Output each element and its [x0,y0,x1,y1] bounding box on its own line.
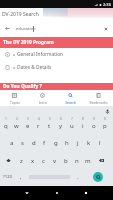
button[interactable]: 6 [55,116,66,133]
button[interactable]: Search [83,168,113,185]
staticText: o [92,122,96,130]
staticText: Topics [10,100,20,105]
button[interactable]: v [49,152,60,169]
other: Voice input [105,109,110,114]
button[interactable]: Space [26,168,73,185]
staticText: DV-2019 Search [2,11,39,18]
staticText: g [54,139,58,147]
button[interactable]: n [71,152,82,169]
staticText: 3 [27,117,29,121]
button[interactable]: g [50,134,61,151]
button[interactable]: Search [57,90,84,106]
button[interactable]: h [61,134,72,151]
other: Clear search [104,27,108,31]
button[interactable]: Intro [29,90,56,106]
staticText: x [31,157,35,165]
staticText: n [75,157,79,165]
staticText: Intro [39,100,47,105]
staticText: , [20,173,22,181]
staticText: l [99,139,101,147]
button[interactable]: k [83,134,94,151]
button[interactable]: , [16,168,26,185]
staticText: The DV 2019 Program [3,39,54,46]
button[interactable]: The DV 2019 Program [0,37,113,48]
button[interactable]: 4 [33,116,44,133]
button[interactable]: . [73,168,83,185]
button[interactable]: z [16,152,27,169]
button[interactable]: Bookmarks [85,90,112,106]
button[interactable]: Topics [1,90,28,106]
button[interactable]: 9 [88,116,99,133]
staticText: v [53,157,57,165]
staticText: m [85,157,91,165]
other: Back [5,26,10,31]
staticText: Do You Qualify ? [3,83,42,90]
staticText: b [64,157,68,165]
staticText: s [21,139,24,147]
button[interactable]: 7 [66,116,77,133]
staticText: r [37,122,40,130]
button[interactable]: Back [1,22,112,35]
staticText: 2 [16,117,18,121]
staticText: y [59,122,63,130]
staticText: u [70,122,74,130]
staticText: 6 [60,117,62,121]
button[interactable]: Do You Qualify ? [0,83,113,90]
staticText: 4 [38,117,40,121]
staticText: Bookmarks [89,100,108,105]
staticText: Search [65,100,76,105]
staticText: c [42,157,45,165]
staticText: Dates & Details [17,64,52,71]
button[interactable]: f [39,134,50,151]
button[interactable]: a [6,134,17,151]
button[interactable]: 3 [22,116,33,133]
button[interactable]: ?123 [0,168,16,185]
staticText: f [43,139,46,147]
staticText: p [103,122,107,130]
staticText: General Information [17,51,64,58]
staticText: h [65,139,69,147]
other: Recent apps [83,190,89,196]
button[interactable]: j [72,134,83,151]
button[interactable]: b [60,152,71,169]
button[interactable]: 1 [0,116,11,133]
button[interactable]: Dates & Details [0,61,113,74]
staticText: k [87,139,91,147]
staticText: w [14,122,19,130]
button[interactable]: Shift [0,152,16,169]
staticText: 1 [5,117,7,121]
staticText: 7 [71,117,73,121]
staticText: . [77,173,79,181]
button[interactable]: m [82,152,93,169]
staticText: 0 [104,117,106,121]
button[interactable]: s [17,134,28,151]
other: Back [24,190,30,196]
staticText: ?123 [3,174,13,180]
button[interactable]: l [94,134,105,151]
staticText: i [82,122,84,130]
staticText: 5 [49,117,51,121]
staticText: e [26,122,30,130]
button[interactable]: Backspace [93,152,109,169]
staticText: j [77,139,79,147]
staticText: z [20,157,23,165]
staticText: t [48,122,51,130]
button[interactable]: General Information [0,48,113,61]
button[interactable]: 8 [77,116,88,133]
button[interactable]: 2 [11,116,22,133]
staticText: d [32,139,36,147]
button[interactable]: 5 [44,116,55,133]
staticText: a [10,139,14,147]
button[interactable]: d [28,134,39,151]
staticText: q [4,122,8,130]
other: Home [54,190,60,196]
staticText: 9 [93,117,95,121]
button[interactable]: 0 [99,116,110,133]
staticText: education [16,26,36,32]
button[interactable]: c [38,152,49,169]
button[interactable]: x [27,152,38,169]
staticText: 2:36 [103,2,111,7]
staticText: 8 [82,117,84,121]
